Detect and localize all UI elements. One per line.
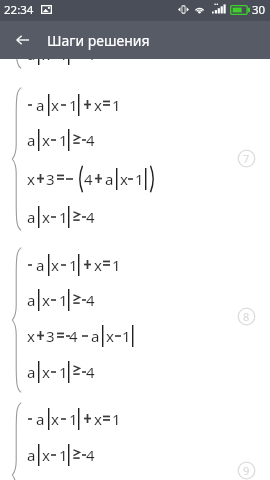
staticText: 4 (86, 130, 95, 150)
staticText: 8 (243, 309, 250, 324)
staticText: 7 (243, 151, 250, 166)
staticText: 1 (59, 445, 68, 465)
button[interactable]: 8 (237, 307, 256, 326)
staticText: 4 (86, 362, 95, 382)
staticText: 3 (46, 169, 55, 189)
staticText: x (120, 169, 128, 189)
staticText: 3 (46, 326, 55, 346)
staticText: 1 (122, 326, 131, 346)
staticText: 1 (69, 409, 78, 429)
staticText: 4 (86, 207, 95, 227)
staticText: 1 (112, 409, 121, 429)
staticText: 4 (86, 445, 95, 465)
staticText: a (27, 290, 36, 310)
staticText: Шаги решения (47, 31, 150, 50)
staticText: x (42, 362, 50, 382)
staticText: a (27, 362, 36, 382)
staticText: 1 (112, 255, 121, 275)
staticText: 1 (59, 207, 68, 227)
staticText: 1 (59, 130, 68, 150)
button[interactable]: Back (0, 21, 44, 59)
staticText: a (27, 44, 36, 64)
staticText: x (51, 409, 59, 429)
staticText: 1 (112, 95, 121, 115)
staticText: a (27, 207, 36, 227)
staticText: a (105, 169, 114, 189)
staticText: x (42, 290, 50, 310)
staticText: 1 (59, 290, 68, 310)
staticText: a (27, 130, 36, 150)
staticText: x (51, 95, 59, 115)
staticText: a (36, 255, 45, 275)
staticText: a (36, 95, 45, 115)
staticText: a (27, 445, 36, 465)
staticText: 4 (84, 169, 93, 189)
staticText: x (106, 326, 114, 346)
staticText: 4 (86, 44, 95, 64)
staticText: x (42, 207, 50, 227)
staticText: x (42, 44, 50, 64)
staticText: x (51, 255, 59, 275)
staticText: 1 (135, 169, 144, 189)
staticText: 1 (59, 362, 68, 382)
staticText: 1 (69, 95, 78, 115)
button[interactable]: 7 (237, 149, 256, 168)
staticText: a (36, 409, 45, 429)
staticText: 22:34 (4, 2, 34, 18)
staticText: x (27, 169, 35, 189)
button[interactable]: 9 (237, 461, 256, 480)
staticText: x (27, 326, 35, 346)
staticText: 4 (86, 290, 95, 310)
staticText: x (42, 130, 50, 150)
staticText: x (94, 255, 102, 275)
staticText: x (94, 409, 102, 429)
staticText: 4 (69, 326, 78, 346)
staticText: x (42, 445, 50, 465)
staticText: 1 (59, 44, 68, 64)
staticText: 1 (69, 255, 78, 275)
staticText: a (91, 326, 100, 346)
staticText: 9 (243, 463, 250, 478)
staticText: 30 (252, 2, 266, 18)
staticText: x (94, 95, 102, 115)
